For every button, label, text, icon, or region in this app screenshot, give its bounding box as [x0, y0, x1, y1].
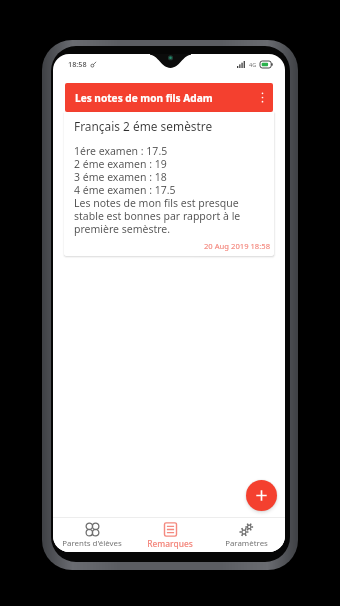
- button[interactable]: Les notes de mon fils Adam: [65, 83, 273, 112]
- staticText: Parents d'élèves: [62, 538, 122, 549]
- staticText: Remarques: [147, 538, 193, 549]
- button[interactable]: Français 2 éme semèstre: [64, 112, 274, 256]
- button[interactable]: More options: [252, 83, 273, 111]
- staticText: 20 Aug 2019 18:58: [204, 241, 271, 251]
- staticText: Les notes de mon fils Adam: [75, 91, 213, 105]
- staticText: 1ére examen : 17.5 2 éme examen : 19 3 é…: [74, 144, 252, 236]
- button[interactable]: Parents d'élèves: [53, 518, 131, 552]
- button[interactable]: Remarques: [131, 518, 208, 552]
- staticText: Paramètres: [225, 538, 268, 549]
- button[interactable]: Add note: [246, 480, 277, 511]
- staticText: Français 2 éme semèstre: [74, 118, 213, 134]
- staticText: 4G: [249, 61, 257, 68]
- staticText: 18:58: [68, 59, 87, 69]
- button[interactable]: Paramètres: [208, 518, 285, 552]
